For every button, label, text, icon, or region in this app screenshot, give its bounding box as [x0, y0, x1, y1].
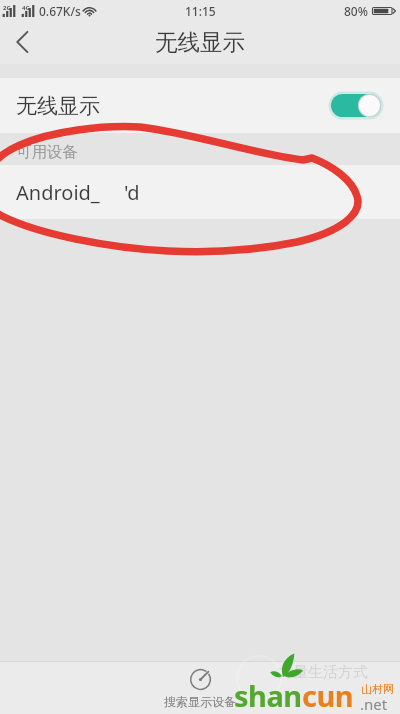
staticText: .net [360, 694, 388, 714]
staticText: 2G [3, 4, 11, 12]
staticText: 无线显示 [16, 93, 100, 119]
staticText: 搜索显示设备 [164, 694, 236, 709]
staticText: 11:15 [185, 3, 216, 19]
other: 搜索显示设备 [190, 669, 211, 690]
staticText: cun [302, 676, 354, 714]
staticText: 无线显示 [155, 28, 245, 56]
button[interactable]: 返回 [0, 22, 44, 64]
button[interactable]: 无线显示开关 [331, 94, 381, 117]
staticText: 力量生活方式 [278, 663, 368, 682]
button[interactable]: 无线显示 [0, 78, 400, 133]
staticText: 'd [124, 179, 140, 206]
staticText: 4G [22, 4, 30, 12]
staticText: 可用设备 [16, 142, 78, 162]
staticText: 山村网 [361, 682, 394, 696]
button[interactable]: Android_ [0, 165, 400, 219]
staticText: 80% [344, 3, 368, 19]
staticText: Android_ [16, 179, 100, 206]
staticText: 0.67K/s [39, 3, 81, 19]
staticText: shan [234, 676, 302, 714]
button[interactable]: 搜索显示设备 [164, 669, 236, 709]
